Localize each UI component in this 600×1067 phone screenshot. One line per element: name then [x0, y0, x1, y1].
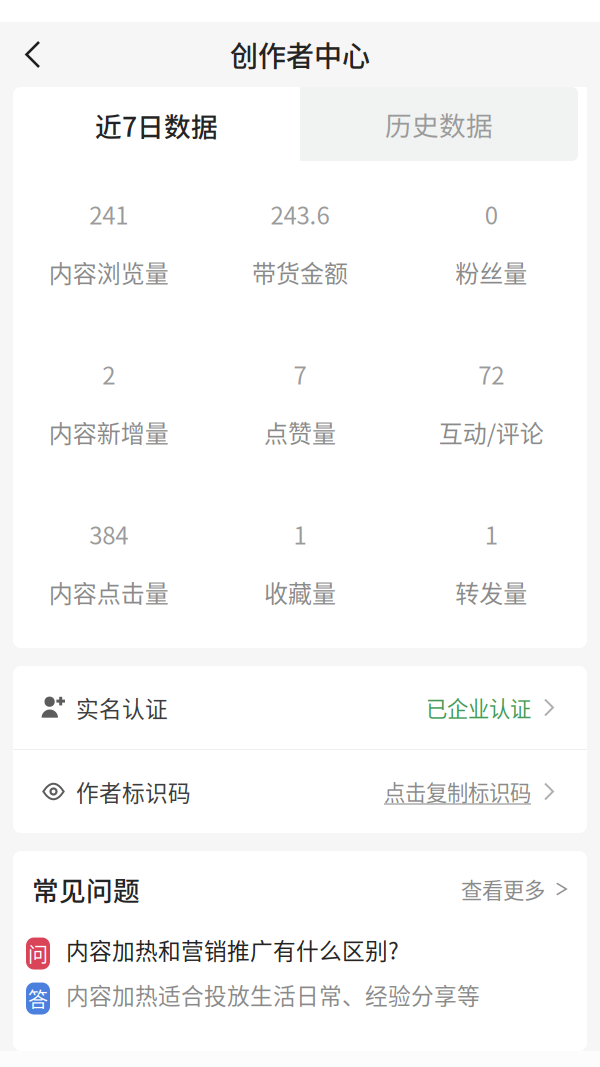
button[interactable]: Back	[0, 22, 59, 87]
staticText: 7	[293, 357, 306, 391]
staticText: 243.6	[270, 197, 329, 231]
staticText: 收藏量	[264, 575, 336, 609]
staticText: 作者标识码	[76, 775, 191, 808]
staticText: 互动/评论	[439, 415, 544, 449]
staticText: 粉丝量	[455, 255, 527, 289]
staticText: 点击复制标识码	[384, 776, 531, 807]
staticText: 点赞量	[264, 415, 336, 449]
staticText: 转发量	[455, 575, 527, 609]
button[interactable]: 历史数据	[300, 87, 587, 163]
staticText: 答	[28, 984, 48, 1013]
staticText: 近7日数据	[95, 106, 218, 144]
staticText: 241	[89, 197, 128, 231]
staticText: 常见问题	[32, 870, 140, 908]
staticText: 实名认证	[76, 691, 168, 724]
staticText: 查看更多	[461, 874, 545, 904]
staticText: 1	[485, 517, 498, 551]
button[interactable]: 实名认证	[13, 666, 587, 749]
staticText: 72	[478, 357, 504, 391]
staticText: 内容点击量	[49, 575, 169, 609]
staticText: 已企业认证	[426, 692, 531, 723]
staticText: 历史数据	[385, 105, 493, 143]
staticText: 内容加热和营销推广有什么区别?	[66, 933, 399, 966]
staticText: 0	[485, 197, 498, 231]
staticText: 内容新增量	[49, 415, 169, 449]
button[interactable]: 问	[13, 927, 587, 972]
staticText: 2	[102, 357, 115, 391]
staticText: 1	[293, 517, 306, 551]
staticText: 创作者中心	[230, 34, 370, 75]
button[interactable]: 查看更多	[461, 874, 567, 904]
staticText: 带货金额	[252, 255, 348, 289]
staticText: 内容加热适合投放生活日常、经验分享等	[66, 978, 480, 1011]
button[interactable]: 作者标识码	[13, 750, 587, 833]
staticText: 内容浏览量	[49, 255, 169, 289]
button[interactable]: 答	[13, 972, 587, 1017]
staticText: 问	[28, 939, 48, 968]
button[interactable]: 近7日数据	[13, 87, 300, 163]
staticText: 384	[89, 517, 128, 551]
